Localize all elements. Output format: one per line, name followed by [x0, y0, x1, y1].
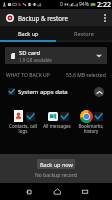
button[interactable]: SD card — [5, 47, 107, 64]
button[interactable]: Backup & restore — [0, 9, 112, 26]
button[interactable]: System apps data — [0, 85, 112, 98]
button[interactable]: Contacts, call logs — [6, 109, 40, 135]
staticText: Bookmarks, history — [78, 123, 104, 135]
button[interactable]: Back — [15, 183, 43, 200]
staticText: No backup record — [35, 172, 77, 179]
button[interactable]: Back up now — [37, 159, 75, 169]
button[interactable]: More options — [98, 9, 112, 26]
button[interactable]: Back up — [0, 26, 56, 40]
staticText: Back up — [18, 30, 39, 37]
button[interactable]: Collapse — [94, 87, 104, 97]
staticText: All messages — [43, 123, 71, 129]
button[interactable]: Restore — [56, 26, 112, 40]
staticText: 0 — [60, 1, 63, 8]
button[interactable]: Bookmarks, history — [74, 109, 108, 135]
staticText: Restore — [74, 30, 94, 37]
staticText: Backup & restore — [18, 14, 68, 22]
staticText: Back up now — [40, 161, 73, 168]
staticText: WHAT TO BACK UP — [6, 72, 50, 79]
button[interactable]: All messages — [40, 109, 74, 129]
button[interactable]: Recents — [71, 183, 99, 200]
staticText: 1.9 GB available — [19, 57, 52, 63]
staticText: 2:22 — [97, 0, 111, 9]
staticText: SD card — [19, 49, 41, 57]
staticText: 94% — [79, 1, 89, 8]
staticText: 53.6 MB selected — [66, 72, 106, 79]
staticText: System apps data — [18, 88, 68, 96]
staticText: Contacts, call logs — [9, 123, 37, 135]
button[interactable]: Home — [43, 183, 71, 200]
